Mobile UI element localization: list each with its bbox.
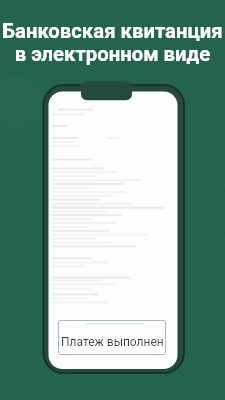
staticText: Банковская квитанция в электронном виде — [0, 19, 225, 66]
staticText: Платеж выполнен — [61, 335, 164, 349]
button[interactable]: Платеж выполнен — [58, 320, 166, 355]
